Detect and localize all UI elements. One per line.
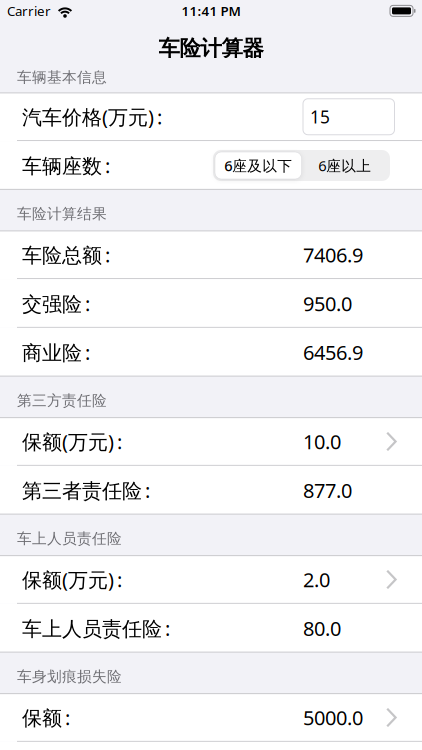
staticText: 车身划痕损失险: [17, 668, 122, 686]
staticText: 车险总额 :: [22, 241, 110, 268]
button[interactable]: 保额 :: [0, 693, 422, 742]
staticText: 第三方责任险: [17, 392, 107, 410]
staticText: 车辆座数 :: [22, 152, 110, 179]
staticText: 10.0: [303, 428, 341, 455]
staticText: 车上人员责任险 :: [22, 615, 170, 642]
staticText: 6座以上: [318, 156, 371, 175]
staticText: 保额 :: [22, 704, 70, 731]
staticText: 11:41 PM: [181, 2, 240, 20]
button[interactable]: 保额(万元) :: [0, 555, 422, 604]
staticText: 2.0: [303, 566, 330, 593]
button[interactable]: 6座及以下: [215, 152, 301, 179]
staticText: 保额(万元) :: [22, 428, 122, 455]
staticText: 950.0: [303, 290, 352, 317]
staticText: 6座及以下: [224, 156, 292, 175]
staticText: 第三者责任险 :: [22, 477, 150, 504]
staticText: 5000.0: [303, 704, 363, 731]
staticText: 15: [310, 105, 330, 128]
staticText: 80.0: [303, 615, 341, 642]
button[interactable]: 保额(万元) :: [0, 417, 422, 466]
staticText: 车险计算结果: [17, 205, 107, 223]
staticText: 交强险 :: [22, 290, 90, 317]
staticText: 商业险 :: [22, 339, 90, 366]
button[interactable]: 6座以上: [301, 152, 388, 179]
staticText: 7406.9: [303, 241, 363, 268]
staticText: Carrier: [7, 2, 51, 20]
staticText: 车上人员责任险: [17, 530, 122, 548]
staticText: 保额(万元) :: [22, 566, 122, 593]
button[interactable]: 汽车价格输入框: [303, 99, 394, 135]
staticText: 车辆基本信息: [17, 68, 107, 86]
staticText: 877.0: [303, 477, 352, 504]
staticText: 汽车价格(万元) :: [22, 103, 162, 130]
staticText: 6456.9: [303, 339, 363, 366]
staticText: 车险计算器: [158, 35, 263, 61]
